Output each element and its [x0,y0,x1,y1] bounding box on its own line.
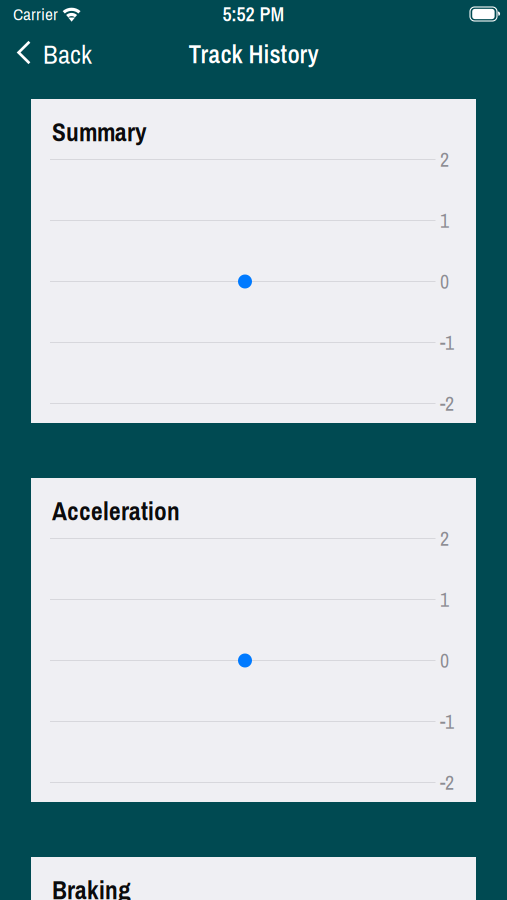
staticText: 2 [440,525,449,552]
staticText: -2 [440,769,454,796]
staticText: 1 [440,586,449,613]
staticText: Summary [52,115,147,149]
staticText: Acceleration [52,494,180,528]
staticText: Braking [52,873,131,900]
button[interactable]: Back [0,32,128,76]
staticText: -2 [440,390,454,417]
staticText: -1 [440,329,454,356]
staticText: 0 [440,647,449,674]
staticText: 1 [440,207,449,234]
staticText: 5:52 PM [222,0,284,27]
staticText: Carrier [13,2,58,26]
staticText: 2 [440,146,449,173]
staticText: -1 [440,708,454,735]
staticText: Back [43,36,92,72]
staticText: 0 [440,268,449,295]
staticText: Track History [188,37,318,71]
